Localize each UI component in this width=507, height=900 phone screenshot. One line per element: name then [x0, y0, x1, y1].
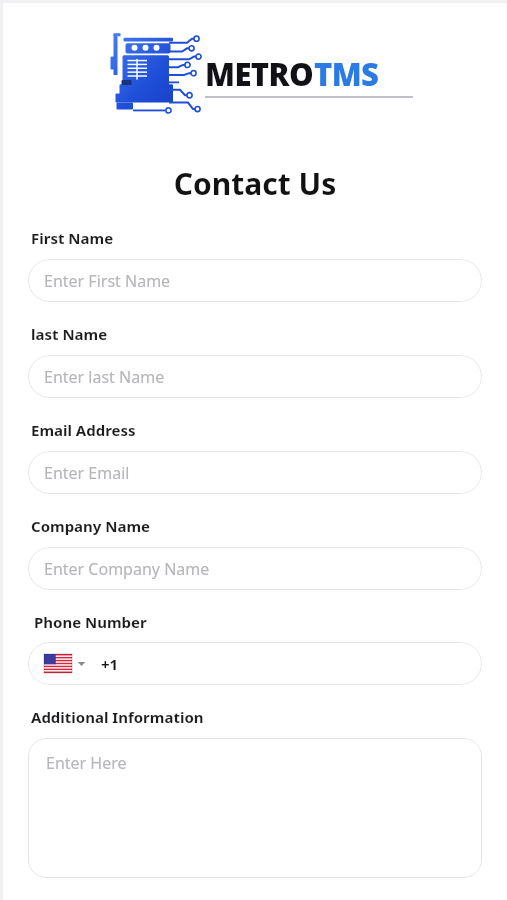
staticText: Phone Number — [34, 612, 147, 632]
staticText: TMS — [314, 53, 379, 95]
staticText: Enter First Name — [44, 270, 171, 292]
staticText: Company Name — [31, 516, 151, 536]
staticText: Enter Here — [46, 752, 127, 774]
staticText: Enter Company Name — [44, 558, 210, 580]
button[interactable]: Enter last Name — [28, 355, 482, 398]
button[interactable]: Enter Here — [28, 738, 482, 878]
button[interactable]: Enter Company Name — [28, 547, 482, 590]
button[interactable]: Enter Email — [28, 451, 482, 494]
staticText: Enter Email — [44, 462, 130, 484]
staticText: METRO — [205, 53, 314, 95]
button[interactable]: Enter First Name — [28, 259, 482, 302]
staticText: Enter last Name — [44, 366, 165, 388]
staticText: +1 — [101, 654, 119, 674]
staticText: last Name — [31, 324, 108, 344]
button[interactable]: Select country code — [42, 652, 88, 675]
staticText: Email Address — [31, 420, 136, 440]
staticText: Contact Us — [3, 163, 507, 204]
staticText: Additional Information — [31, 707, 204, 727]
button[interactable]: Select country code — [28, 642, 482, 685]
staticText: First Name — [31, 228, 114, 248]
